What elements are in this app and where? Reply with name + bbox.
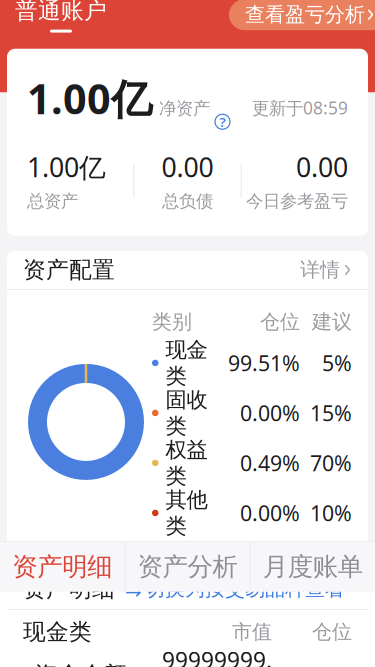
staticText: 0.00 [161, 149, 213, 185]
staticText: 15% [310, 399, 352, 427]
staticText: 建议 [312, 310, 352, 334]
staticText: 查看盈亏分析 [245, 2, 365, 27]
staticText: 权益类 [165, 437, 207, 489]
button[interactable]: 查看盈亏分析 [229, 0, 375, 30]
button[interactable]: 资产明细 [0, 542, 125, 592]
staticText: 市值 [232, 620, 272, 644]
button[interactable]: 净资产说明 [210, 114, 230, 129]
staticText: 0.49% [240, 449, 300, 477]
staticText: 资产配置 [23, 256, 115, 284]
staticText: 0.00% [240, 499, 300, 527]
staticText: 1.00亿 [27, 149, 106, 185]
staticText: 更新于08:59 [252, 96, 348, 119]
staticText: 10% [310, 499, 352, 527]
staticText: 资产明细 [23, 575, 115, 603]
button[interactable]: 资金余额 [7, 654, 368, 667]
staticText: 99.51% [228, 349, 300, 377]
staticText: 资产分析 [137, 551, 237, 582]
staticText: 详情 [300, 258, 340, 282]
staticText: ⇆ [125, 578, 142, 600]
staticText: 月度账单 [263, 551, 363, 582]
staticText: 固收类 [165, 387, 207, 439]
staticText: 其他类 [165, 487, 207, 539]
staticText: 现金类 [23, 618, 92, 646]
staticText: 0.00% [240, 399, 300, 427]
staticText: 总负债 [162, 191, 213, 212]
staticText: 今日参考盈亏 [246, 191, 348, 212]
staticText: 资金余额 [35, 661, 127, 667]
staticText: 类别 [152, 310, 192, 334]
staticText: 资产明细 [12, 551, 112, 582]
staticText: 99999999.00 [162, 645, 272, 667]
staticText: 70% [310, 449, 352, 477]
staticText: 仓位 [260, 310, 300, 334]
staticText: 1.00亿 [27, 71, 152, 126]
staticText: 普通账户 [15, 0, 107, 25]
button[interactable]: 月度账单 [250, 542, 375, 592]
staticText: 净资产 [159, 98, 210, 119]
button[interactable]: 普通账户 [15, 0, 107, 33]
staticText: 现金类 [165, 337, 207, 389]
staticText: 总资产 [27, 191, 78, 212]
staticText: 切换为按交易品种查看 [145, 577, 345, 601]
staticText: ? [219, 113, 225, 131]
button[interactable]: 资产配置 [7, 251, 368, 289]
button[interactable]: 资产分析 [125, 542, 250, 592]
staticText: 仓位 [312, 620, 352, 644]
staticText: 0.00 [296, 149, 348, 185]
staticText: 5% [322, 349, 352, 377]
button[interactable]: ⇆ [115, 577, 345, 601]
